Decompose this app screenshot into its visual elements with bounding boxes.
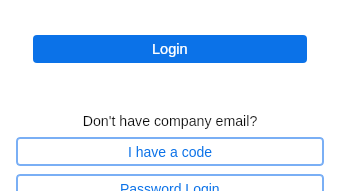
button[interactable]: Login xyxy=(33,35,307,63)
button[interactable]: I have a code xyxy=(16,137,324,166)
staticText: Login xyxy=(152,41,188,57)
staticText: Password Login xyxy=(120,181,220,191)
staticText: I have a code xyxy=(128,144,213,160)
button[interactable]: Password Login xyxy=(16,174,324,191)
staticText: Don't have company email? xyxy=(0,113,340,129)
